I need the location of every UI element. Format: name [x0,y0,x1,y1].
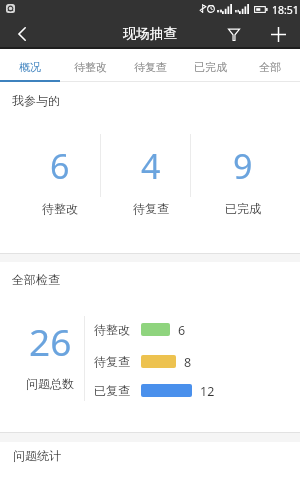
staticText: 全部检查 [12,272,60,287]
staticText: 8 [184,354,192,368]
button[interactable]: 9 [198,82,288,253]
staticText: 现场抽查 [123,25,177,42]
staticText: 4 [141,143,161,189]
staticText: 9 [233,143,253,189]
staticText: 待复查 [134,60,167,74]
button[interactable]: 已完成 [180,49,240,82]
button[interactable]: Back [0,19,44,49]
staticText: 问题统计 [13,448,61,463]
button[interactable]: 概况 [0,49,60,82]
staticText: 待整改 [94,322,130,336]
button[interactable]: 待复查 [120,49,180,82]
staticText: 概况 [19,60,41,74]
staticText: 全部 [259,60,281,74]
staticText: 已复查 [94,383,130,397]
staticText: 6 [178,322,186,336]
staticText: 我参与的 [12,93,60,108]
button[interactable]: Add [256,19,300,49]
button[interactable]: 4 [106,82,196,253]
button[interactable]: 待整改 [60,49,120,82]
staticText: 6 [50,143,70,189]
staticText: 待复查 [133,201,169,216]
button[interactable]: Filter [212,19,256,49]
button[interactable]: 全部 [240,49,300,82]
staticText: 已完成 [194,60,227,74]
staticText: 待整改 [42,201,78,216]
button[interactable]: 6 [15,82,105,253]
staticText: 12 [200,383,215,397]
staticText: 18:51 [272,3,299,17]
staticText: 待整改 [74,60,107,74]
staticText: 26 [29,316,72,366]
staticText: 已完成 [225,201,261,216]
staticText: 待复查 [94,354,130,368]
staticText: 问题总数 [26,376,74,391]
